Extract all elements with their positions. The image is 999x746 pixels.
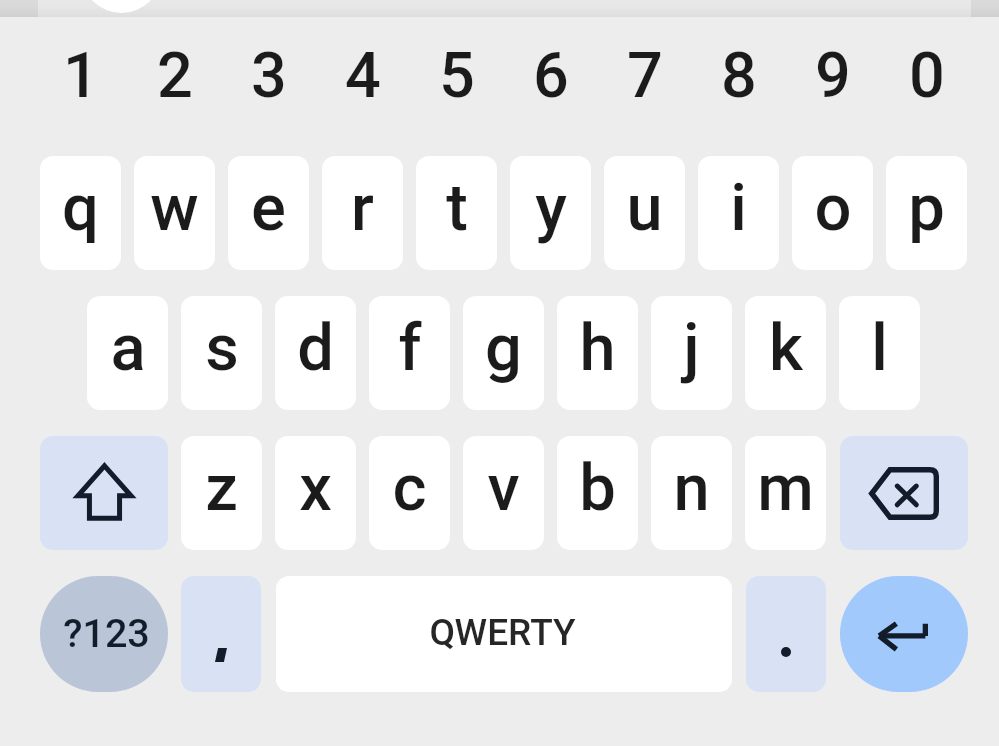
- staticText: ?123: [63, 610, 150, 656]
- staticText: 9: [815, 39, 851, 113]
- button[interactable]: ?123: [40, 576, 168, 692]
- staticText: 8: [721, 39, 757, 113]
- staticText: h: [579, 310, 616, 386]
- staticText: 2: [157, 39, 193, 113]
- staticText: i: [730, 170, 747, 246]
- button[interactable]: w: [134, 156, 215, 270]
- staticText: d: [297, 310, 334, 386]
- staticText: s: [205, 310, 239, 386]
- staticText: 1: [63, 39, 99, 113]
- button[interactable]: 5: [416, 26, 497, 122]
- button[interactable]: r: [322, 156, 403, 270]
- staticText: 6: [533, 39, 569, 113]
- staticText: r: [351, 170, 374, 246]
- staticText: z: [205, 450, 238, 526]
- button[interactable]: g: [463, 296, 544, 410]
- button[interactable]: 1: [40, 26, 121, 122]
- button[interactable]: u: [604, 156, 685, 270]
- button[interactable]: m: [745, 436, 826, 550]
- button[interactable]: z: [181, 436, 262, 550]
- button[interactable]: k: [745, 296, 826, 410]
- staticText: n: [673, 450, 710, 526]
- staticText: j: [683, 310, 700, 386]
- button[interactable]: l: [839, 296, 920, 410]
- button[interactable]: b: [557, 436, 638, 550]
- button[interactable]: Enter: [840, 576, 968, 692]
- button[interactable]: v: [463, 436, 544, 550]
- button[interactable]: n: [651, 436, 732, 550]
- button[interactable]: i: [698, 156, 779, 270]
- button[interactable]: 4: [322, 26, 403, 122]
- button[interactable]: 3: [228, 26, 309, 122]
- staticText: o: [814, 170, 852, 246]
- button[interactable]: Shift: [40, 436, 168, 550]
- button[interactable]: d: [275, 296, 356, 410]
- button[interactable]: t: [416, 156, 497, 270]
- staticText: p: [908, 170, 945, 246]
- button[interactable]: 9: [792, 26, 873, 122]
- staticText: e: [251, 170, 286, 246]
- staticText: b: [579, 450, 616, 526]
- staticText: l: [871, 310, 888, 386]
- staticText: 7: [627, 39, 663, 113]
- staticText: 0: [909, 39, 945, 113]
- staticText: k: [769, 310, 803, 386]
- button[interactable]: Period: [746, 576, 826, 692]
- button[interactable]: c: [369, 436, 450, 550]
- button[interactable]: f: [369, 296, 450, 410]
- button[interactable]: x: [275, 436, 356, 550]
- staticText: f: [398, 310, 422, 386]
- button[interactable]: y: [510, 156, 591, 270]
- staticText: u: [626, 170, 663, 246]
- staticText: QWERTY: [429, 611, 576, 654]
- button[interactable]: s: [181, 296, 262, 410]
- button[interactable]: j: [651, 296, 732, 410]
- staticText: x: [299, 450, 332, 526]
- staticText: w: [150, 170, 199, 246]
- staticText: 5: [439, 39, 475, 113]
- staticText: m: [757, 450, 814, 526]
- button[interactable]: 7: [604, 26, 685, 122]
- staticText: q: [62, 170, 99, 246]
- button[interactable]: QWERTY: [276, 576, 732, 692]
- staticText: g: [485, 310, 522, 386]
- staticText: c: [392, 450, 427, 526]
- button[interactable]: 6: [510, 26, 591, 122]
- button[interactable]: Comma: [181, 576, 261, 692]
- button[interactable]: Backspace: [840, 436, 968, 550]
- staticText: a: [110, 310, 146, 386]
- button[interactable]: a: [87, 296, 168, 410]
- staticText: 4: [345, 39, 381, 113]
- staticText: 3: [251, 39, 287, 113]
- button[interactable]: h: [557, 296, 638, 410]
- button[interactable]: p: [886, 156, 967, 270]
- staticText: y: [535, 170, 567, 246]
- button[interactable]: q: [40, 156, 121, 270]
- button[interactable]: 8: [698, 26, 779, 122]
- button[interactable]: e: [228, 156, 309, 270]
- staticText: v: [487, 450, 520, 526]
- staticText: t: [446, 170, 468, 246]
- button[interactable]: 2: [134, 26, 215, 122]
- button[interactable]: 0: [886, 26, 967, 122]
- button[interactable]: o: [792, 156, 873, 270]
